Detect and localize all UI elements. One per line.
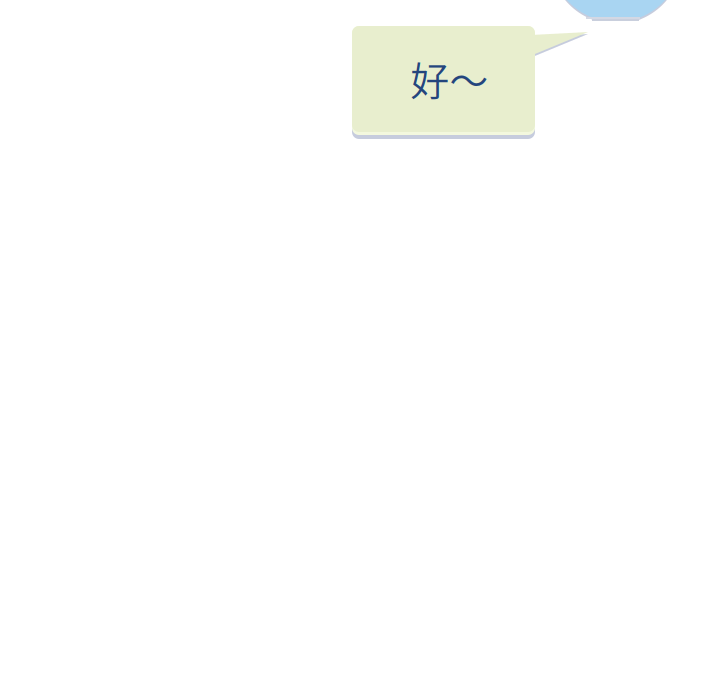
button[interactable]: Contact avatar bbox=[0, 0, 720, 700]
staticText: 好～ bbox=[410, 50, 488, 106]
button[interactable]: 好～ bbox=[352, 26, 535, 135]
